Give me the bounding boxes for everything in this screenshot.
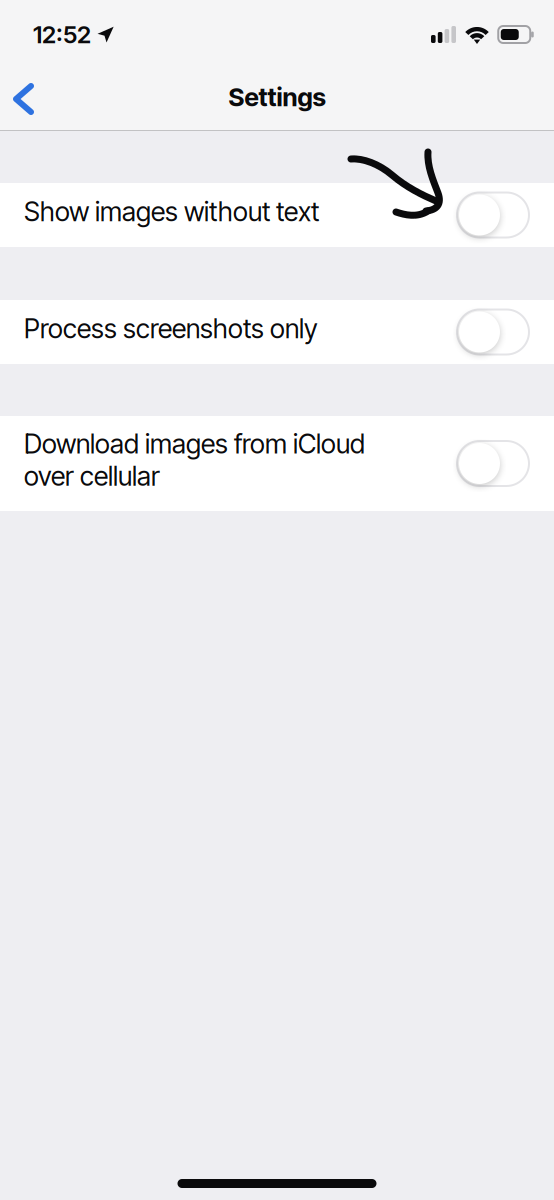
staticText: Process screenshots only <box>24 312 318 345</box>
staticText: Settings <box>228 82 325 112</box>
button[interactable]: Show images without text <box>0 183 554 247</box>
staticText: Show images without text <box>24 195 319 228</box>
button[interactable]: Process screenshots only <box>0 300 554 364</box>
button[interactable]: Back <box>0 62 57 128</box>
staticText: 12:52 <box>33 20 91 49</box>
staticText: Download images from iCloud <box>24 428 365 460</box>
staticText: over cellular <box>24 460 160 492</box>
button[interactable]: Download images from iCloud <box>0 416 554 511</box>
